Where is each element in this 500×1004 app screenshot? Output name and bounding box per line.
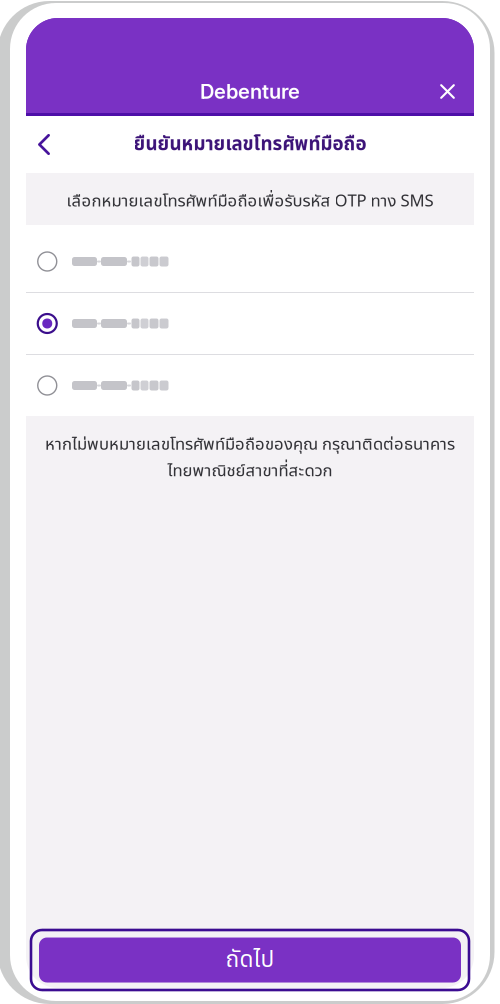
staticText: ยืนยันหมายเลขโทรศัพท์มือถือ [133,130,366,159]
staticText: ไทยพาณิชย์สาขาที่สะดวก [167,459,332,484]
staticText: หากไม่พบหมายเลขโทรศัพท์มือถือของคุณ กรุณ… [45,432,455,457]
button[interactable] [26,231,474,292]
staticText: เลือกหมายเลขโทรศัพท์มือถือเพื่อรับรหัส O… [66,189,433,214]
button[interactable] [26,293,474,354]
staticText: ถัดไป [225,943,274,977]
button[interactable]: Close [426,71,474,112]
button[interactable]: Back [26,122,62,166]
staticText: Debenture [200,79,300,104]
button[interactable] [26,355,474,416]
button[interactable]: ถัดไป [39,937,461,982]
